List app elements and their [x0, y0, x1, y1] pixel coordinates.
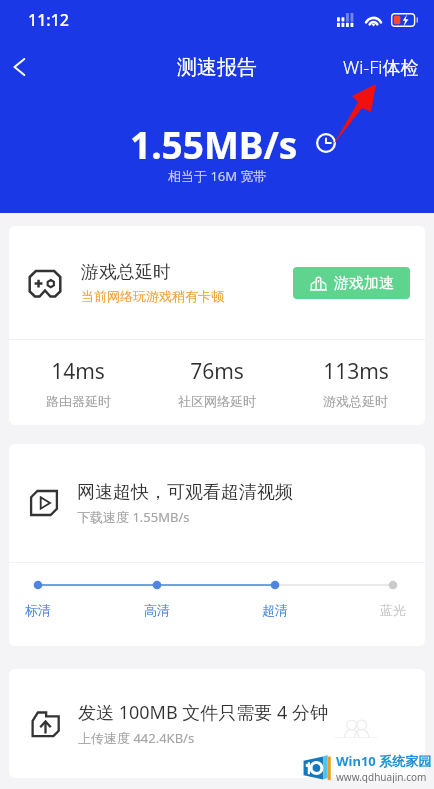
staticText: 76ms	[190, 357, 244, 386]
button[interactable]: 超清	[247, 600, 303, 620]
button[interactable]: 113ms	[286, 357, 425, 409]
staticText: 游戏加速	[334, 274, 394, 293]
button[interactable]: 高清	[129, 600, 185, 620]
staticText: 发送 100MB 文件只需要 4 分钟	[78, 700, 328, 725]
staticText: 超清	[262, 602, 288, 618]
staticText: 蓝光	[380, 602, 406, 618]
staticText: 上传速度 442.4KB/s	[78, 729, 195, 747]
staticText: 网速超快，可观看超清视频	[77, 481, 293, 504]
button[interactable]: Back	[0, 45, 41, 89]
staticText: 相当于 16M 宽带	[168, 167, 267, 185]
staticText: Wi-Fi体检	[343, 55, 419, 80]
staticText: Win10 系统家园	[336, 752, 432, 770]
staticText: 高清	[144, 602, 170, 618]
staticText: 11:12	[28, 9, 69, 31]
staticText: 下载速度 1.55MB/s	[77, 508, 190, 526]
staticText: 113ms	[323, 357, 389, 386]
staticText: 路由器延时	[46, 393, 111, 409]
button[interactable]: 标清	[10, 600, 66, 620]
button[interactable]: 发送 100MB 文件只需要 4 分钟	[9, 669, 425, 778]
staticText: 游戏总延时	[81, 261, 171, 284]
button[interactable]: 14ms	[9, 357, 147, 409]
button[interactable]: 游戏总延时	[9, 226, 425, 339]
staticText: 14ms	[51, 357, 105, 386]
staticText: 游戏总延时	[323, 393, 388, 409]
button[interactable]: 76ms	[147, 357, 286, 409]
staticText: 当前网络玩游戏稍有卡顿	[81, 288, 224, 304]
staticText: 标清	[25, 602, 51, 618]
button[interactable]: 网速超快，可观看超清视频	[9, 444, 425, 562]
staticText: 测速报告	[177, 55, 257, 80]
staticText: 1.55MB/s	[130, 119, 298, 167]
staticText: www.qdhuajin.com	[336, 770, 427, 783]
button[interactable]: 蓝光	[365, 600, 421, 620]
button[interactable]: 游戏加速	[293, 267, 410, 299]
staticText: 社区网络延时	[178, 393, 256, 409]
button[interactable]: Wi-Fi体检	[341, 49, 421, 86]
